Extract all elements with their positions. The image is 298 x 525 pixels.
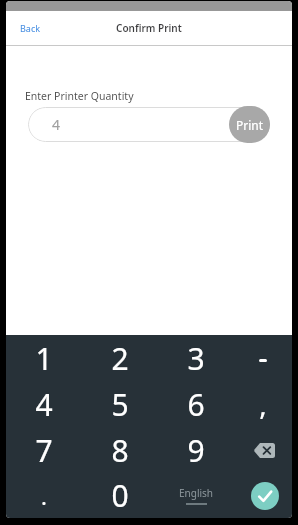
staticText: Enter Printer Quantity — [25, 89, 134, 103]
staticText: 4 — [35, 384, 53, 425]
button[interactable]: 7 — [6, 427, 82, 473]
staticText: 5 — [111, 384, 129, 425]
button[interactable]: 4 — [28, 107, 270, 142]
button[interactable]: Back — [14, 18, 47, 38]
staticText: , — [259, 385, 267, 423]
staticText: 3 — [187, 338, 205, 379]
staticText: 6 — [187, 384, 205, 425]
staticText: English — [179, 486, 214, 500]
button[interactable] — [234, 473, 291, 518]
staticText: 2 — [111, 338, 129, 379]
button[interactable]: 3 — [158, 335, 234, 381]
button[interactable]: . — [6, 473, 82, 518]
staticText: 4 — [52, 115, 61, 134]
staticText: Confirm Print — [116, 21, 182, 35]
button[interactable]: 8 — [82, 427, 158, 473]
button[interactable]: 4 — [6, 381, 82, 427]
button[interactable]: 2 — [82, 335, 158, 381]
button[interactable]: 0 — [82, 473, 158, 518]
button[interactable]: 5 — [82, 381, 158, 427]
staticText: 7 — [35, 430, 53, 471]
staticText: 0 — [111, 475, 129, 516]
staticText: 1 — [35, 338, 53, 379]
staticText: 9 — [187, 430, 205, 471]
staticText: . — [41, 481, 47, 511]
button[interactable]: 9 — [158, 427, 234, 473]
staticText: 8 — [111, 430, 129, 471]
button[interactable]: 6 — [158, 381, 234, 427]
button[interactable]: , — [234, 381, 291, 427]
staticText: Print — [236, 117, 264, 133]
staticText: Back — [20, 22, 41, 34]
button[interactable] — [234, 335, 291, 381]
button[interactable] — [234, 427, 291, 473]
button[interactable]: Print — [229, 106, 270, 143]
button[interactable]: English — [158, 473, 234, 518]
button[interactable]: 1 — [6, 335, 82, 381]
